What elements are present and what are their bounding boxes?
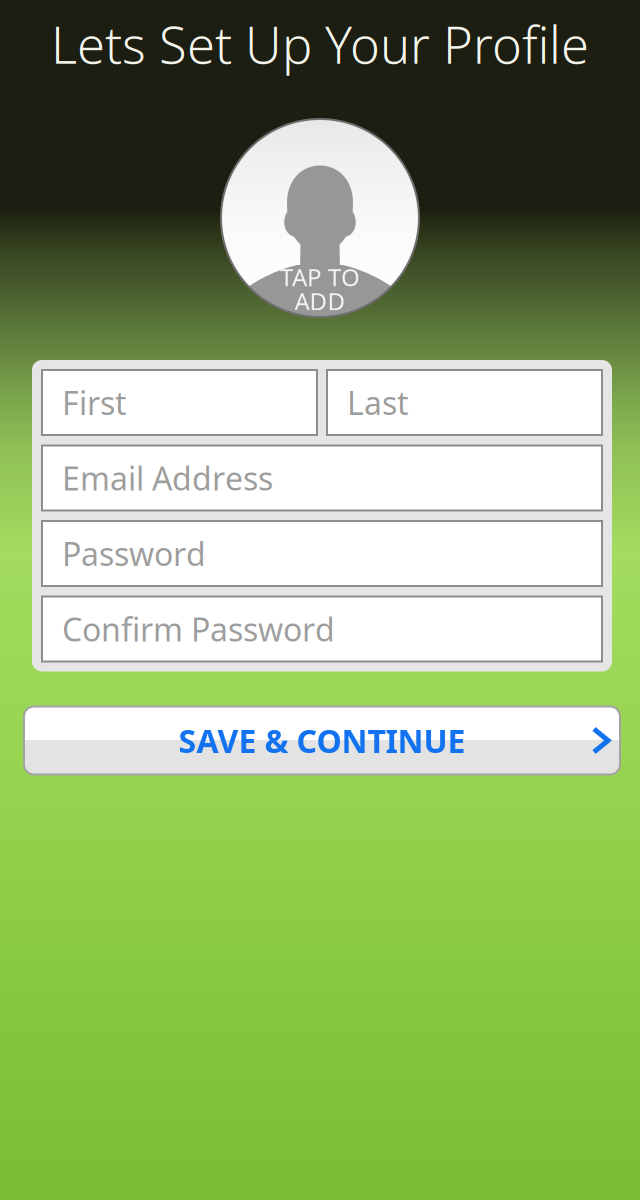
button[interactable]: Tap to add profile photo — [221, 119, 419, 317]
staticText: Lets Set Up Your Profile — [51, 10, 589, 78]
staticText: Email Address — [62, 457, 273, 499]
staticText: TAP TO — [280, 261, 360, 293]
staticText: ADD — [294, 285, 345, 317]
staticText: First — [62, 381, 127, 424]
button[interactable]: SAVE & CONTINUE — [24, 706, 620, 774]
staticText: Last — [347, 381, 409, 424]
staticText: Confirm Password — [62, 608, 335, 650]
staticText: Password — [62, 532, 206, 575]
staticText: SAVE & CONTINUE — [178, 719, 465, 762]
